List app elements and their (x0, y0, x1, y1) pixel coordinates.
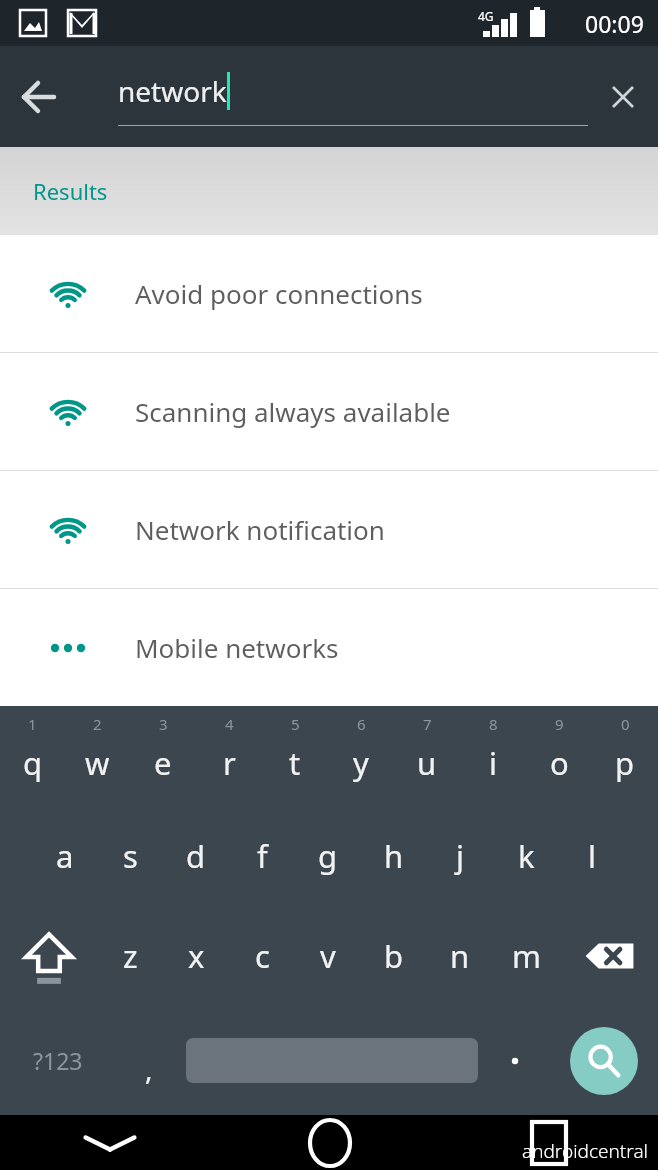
staticText: 2 (93, 714, 102, 734)
button[interactable]: Home (220, 1115, 439, 1170)
staticText: 3 (159, 714, 168, 734)
staticText: p (615, 742, 635, 784)
staticText: y (353, 742, 369, 784)
staticText: j (456, 835, 464, 877)
staticText: 5 (291, 714, 300, 734)
button[interactable]: Avoid poor connections (0, 235, 658, 352)
staticText: a (56, 835, 74, 877)
staticText: Mobile networks (135, 630, 339, 665)
button[interactable]: s (97, 806, 163, 906)
staticText: , (145, 1050, 153, 1088)
button[interactable]: h (361, 806, 427, 906)
staticText: l (588, 835, 596, 877)
button[interactable]: Search (570, 1027, 638, 1095)
staticText: s (123, 835, 138, 877)
staticText: Scanning always available (135, 394, 451, 429)
staticText: k (518, 835, 535, 877)
staticText: ?123 (33, 1045, 83, 1076)
button[interactable]: n (427, 906, 493, 1006)
button[interactable]: 5 (262, 706, 328, 806)
staticText: Avoid poor connections (135, 276, 423, 311)
staticText: Results (33, 176, 108, 206)
staticText: 1 (28, 714, 37, 734)
staticText: n (450, 935, 470, 977)
staticText: Network notification (135, 512, 385, 547)
staticText: androidcentral (522, 1138, 648, 1164)
staticText: 4G (478, 8, 494, 24)
staticText: e (154, 742, 172, 784)
button[interactable]: 0 (592, 706, 658, 806)
staticText: d (186, 835, 206, 877)
button[interactable]: Shift (0, 906, 98, 1006)
button[interactable]: 7 (394, 706, 460, 806)
button[interactable]: 8 (460, 706, 526, 806)
staticText: b (384, 935, 404, 977)
staticText: t (289, 742, 301, 784)
staticText: z (123, 935, 138, 977)
button[interactable]: b (361, 906, 427, 1006)
staticText: 9 (555, 714, 564, 734)
button[interactable]: 9 (526, 706, 592, 806)
button[interactable]: 4 (196, 706, 262, 806)
button[interactable]: m (493, 906, 559, 1006)
button[interactable]: Hide keyboard (0, 1115, 220, 1170)
staticText: i (489, 742, 497, 784)
staticText: r (223, 742, 236, 784)
staticText: 8 (489, 714, 498, 734)
staticText: v (320, 935, 336, 977)
button[interactable]: f (229, 806, 295, 906)
staticText: h (384, 835, 404, 877)
staticText: network (118, 72, 227, 110)
button[interactable]: v (295, 906, 361, 1006)
button[interactable]: 6 (328, 706, 394, 806)
button[interactable]: Clear (588, 62, 658, 132)
button[interactable]: Recents (439, 1115, 658, 1170)
staticText: q (23, 742, 43, 784)
button[interactable]: Backspace (559, 906, 658, 1006)
staticText: m (512, 935, 541, 977)
staticText: 00:09 (585, 8, 644, 39)
button[interactable]: Scanning always available (0, 353, 658, 470)
button[interactable]: Mobile networks (0, 589, 658, 706)
staticText: 6 (357, 714, 366, 734)
staticText: u (417, 742, 437, 784)
button[interactable]: d (163, 806, 229, 906)
button[interactable]: Network notification (0, 471, 658, 588)
staticText: 4 (225, 714, 234, 734)
button[interactable]: 3 (130, 706, 196, 806)
button[interactable]: x (163, 906, 229, 1006)
button[interactable]: k (493, 806, 559, 906)
staticText: x (188, 935, 205, 977)
staticText: f (257, 835, 268, 877)
staticText: c (255, 935, 270, 977)
button[interactable]: g (295, 806, 361, 906)
staticText: w (85, 742, 110, 784)
button[interactable]: z (98, 906, 163, 1006)
staticText: 7 (423, 714, 432, 734)
staticText: 0 (621, 714, 630, 734)
button[interactable] (183, 1006, 481, 1115)
button[interactable]: a (32, 806, 97, 906)
button[interactable]: ?123 (0, 1006, 115, 1115)
button[interactable]: 1 (0, 706, 65, 806)
button[interactable]: l (559, 806, 625, 906)
staticText: o (550, 742, 569, 784)
button[interactable]: , (115, 1006, 183, 1115)
staticText: g (318, 835, 338, 877)
button[interactable]: Back (0, 59, 76, 135)
button[interactable]: 2 (65, 706, 130, 806)
button[interactable] (481, 1006, 549, 1115)
button[interactable]: j (427, 806, 493, 906)
button[interactable]: c (229, 906, 295, 1006)
